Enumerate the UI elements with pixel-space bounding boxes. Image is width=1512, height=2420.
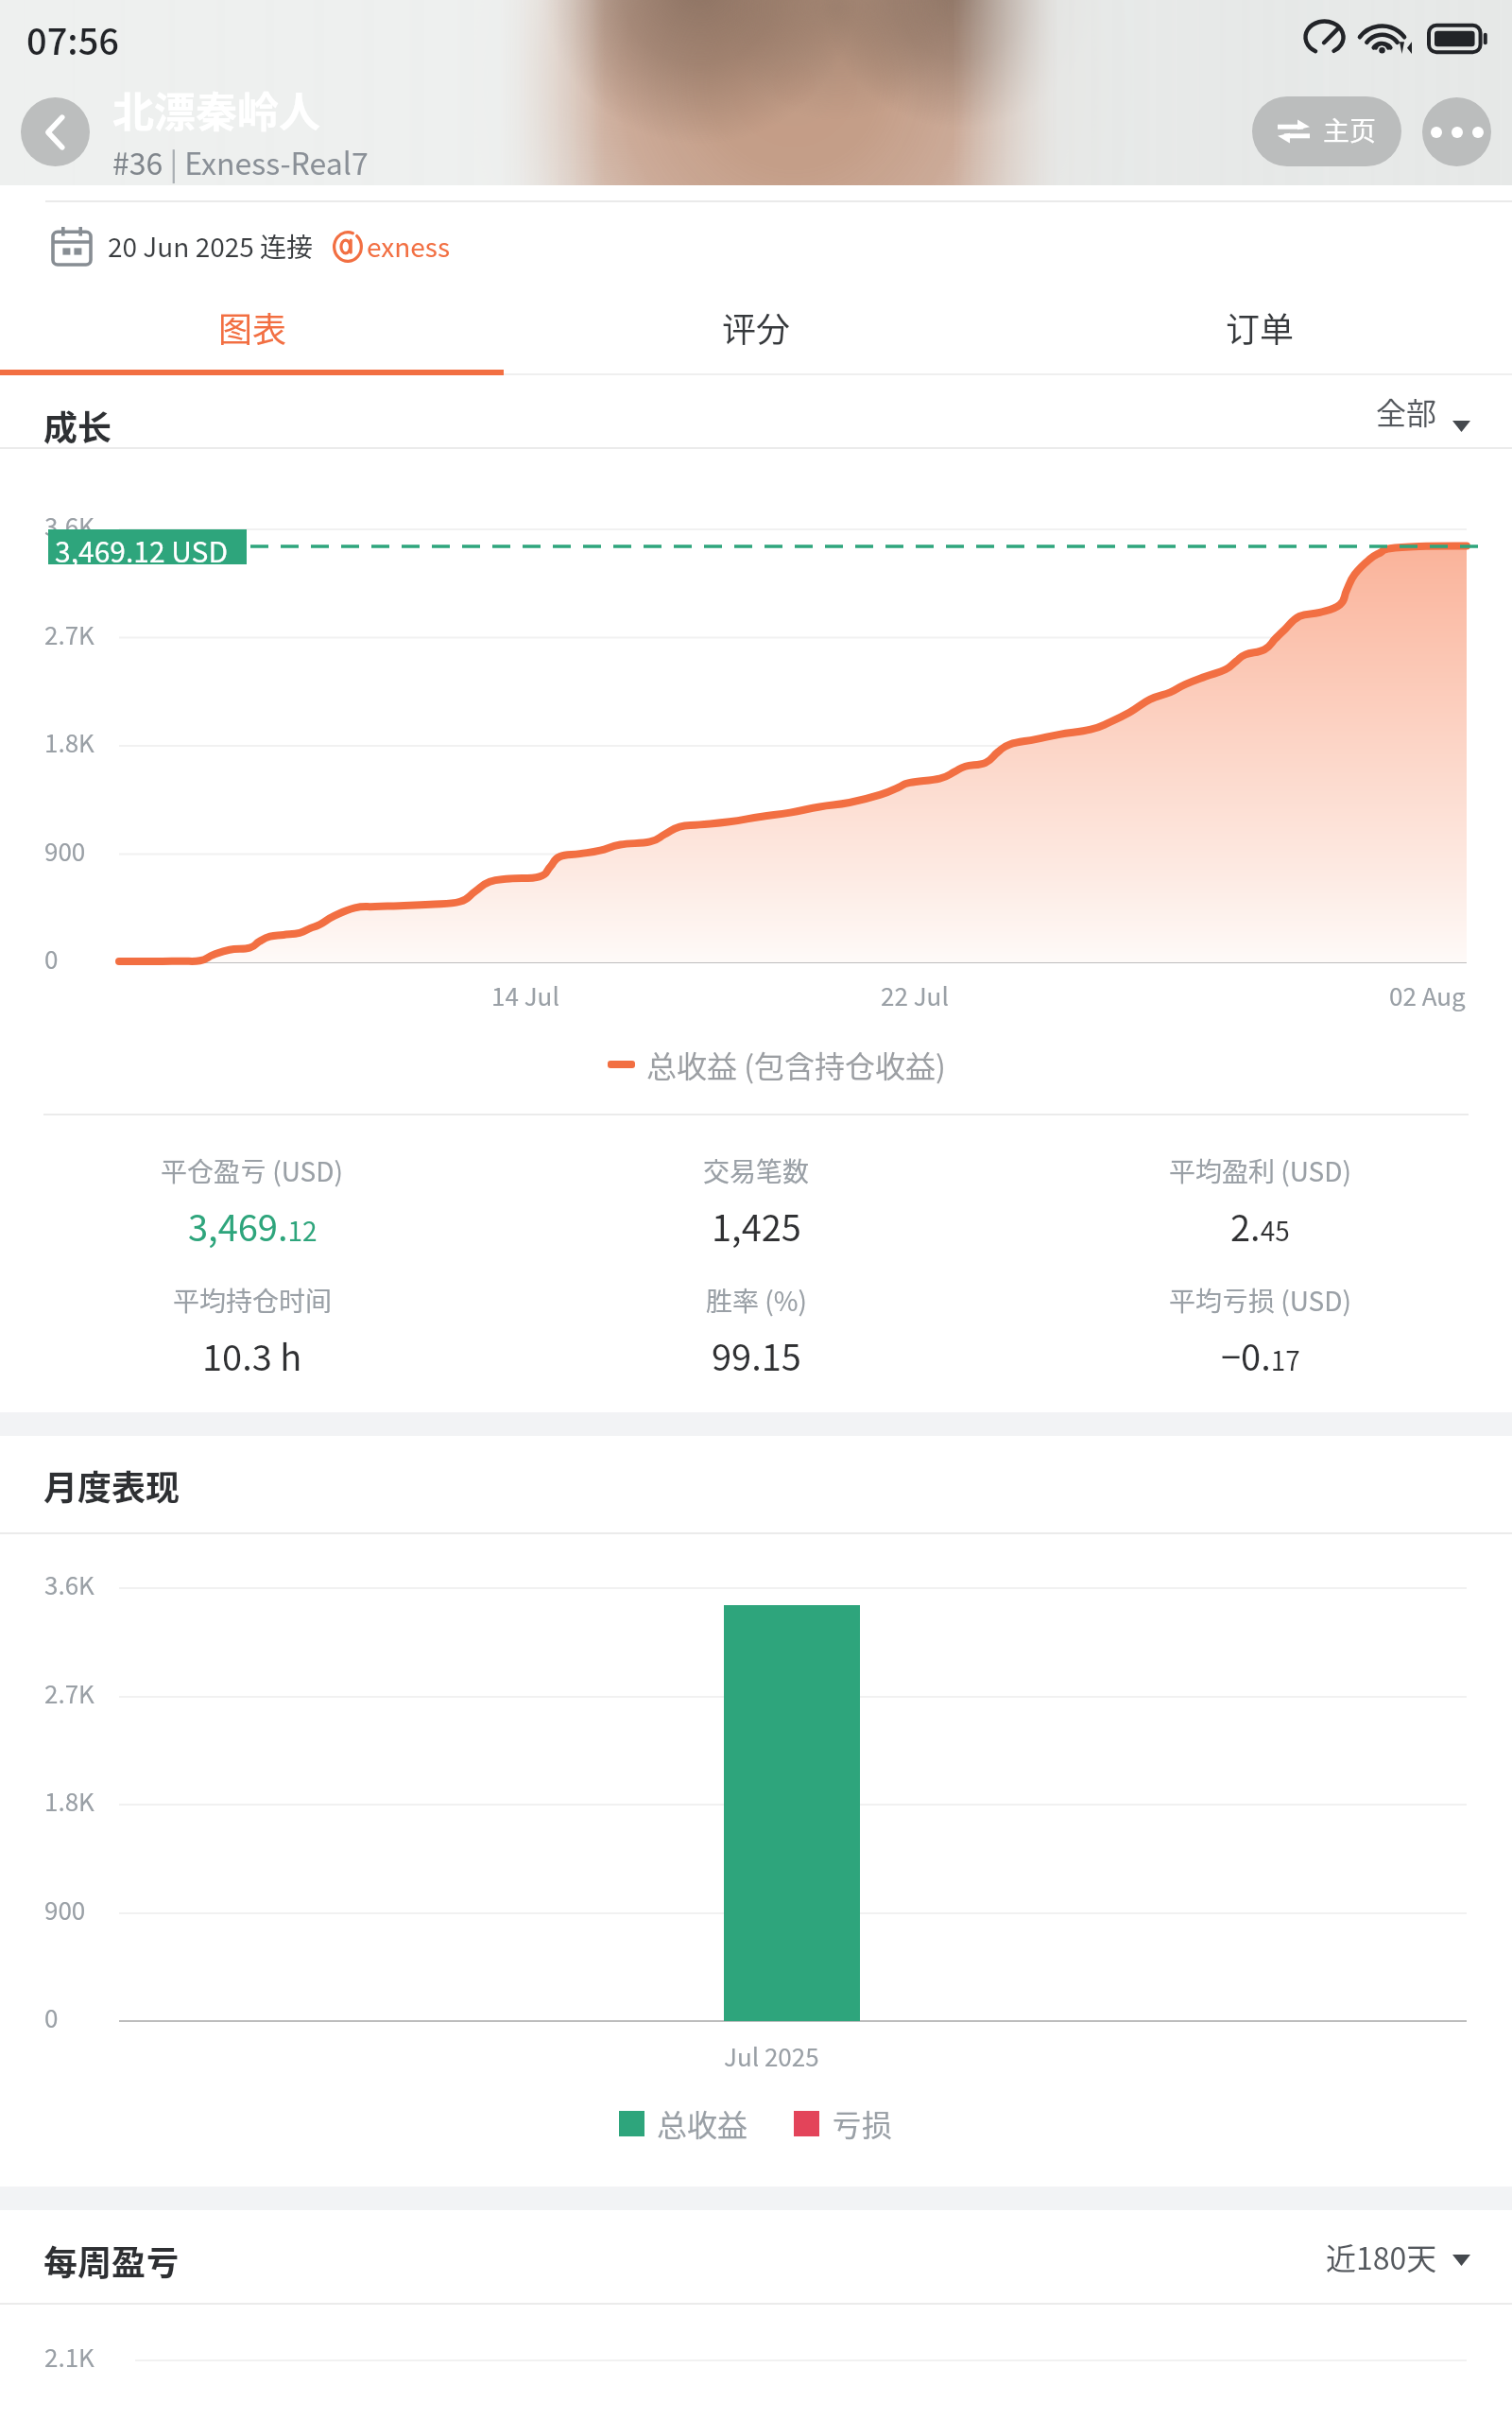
button[interactable]: More options [1422,97,1491,166]
staticText: −0.17 [1221,1329,1300,1381]
staticText: 主页 [1323,111,1377,149]
staticText: 1.8K [44,1783,94,1819]
staticText: 0 [44,1999,59,2035]
staticText: 2.7K [44,1675,94,1711]
staticText: 1.8K [44,724,94,760]
staticText: 平均持仓时间 [173,1281,333,1320]
staticText: 订单 [1226,302,1295,352]
button[interactable]: 全部 [1376,389,1470,433]
staticText: 总收益 (包含持仓收益) [646,1043,946,1086]
staticText: 平均亏损 (USD) [1169,1281,1352,1320]
staticText: 亏损 [832,2101,893,2145]
staticText: 900 [44,1892,86,1927]
staticText: 月度表现 [43,1461,180,1510]
staticText: 全部 [1376,389,1437,433]
staticText: Jul 2025 [724,2038,819,2074]
staticText: #36 | Exness-Real7 [112,140,369,183]
staticText: 评分 [722,302,791,352]
button[interactable]: Back [21,97,90,166]
staticText: 总收益 [657,2101,748,2145]
staticText: 02 Aug [1389,977,1466,1013]
button[interactable]: 近180天 [1326,2235,1470,2278]
staticText: 平均盈利 (USD) [1169,1151,1352,1190]
button[interactable]: 订单 [1008,284,1512,375]
staticText: 胜率 (%) [706,1281,807,1320]
staticText: 图表 [218,302,287,352]
staticText: 平仓盈亏 (USD) [161,1151,344,1190]
staticText: exness [367,227,451,266]
staticText: 近180天 [1326,2235,1437,2278]
staticText: 3.6K [44,508,94,544]
staticText: 22 Jul [881,977,949,1013]
staticText: 3.6K [44,1566,94,1602]
button[interactable]: 主页 [1252,96,1401,166]
staticText: 99.15 [712,1329,801,1381]
staticText: 3,469.12 [188,1200,318,1252]
button[interactable]: 图表 [0,284,505,375]
staticText: 2.1K [44,2339,94,2375]
staticText: 成长 [43,401,112,450]
staticText: 0 [44,941,59,977]
staticText: 1,425 [712,1200,801,1252]
button[interactable]: exness [333,227,451,266]
staticText: 07:56 [26,13,119,65]
staticText: 北漂秦岭人 [112,79,320,140]
staticText: 10.3 h [202,1329,302,1381]
staticText: 20 Jun 2025 连接 [108,227,314,266]
staticText: 3,469.12 USD [55,529,229,564]
staticText: 2.45 [1230,1200,1290,1252]
staticText: 14 Jul [491,977,559,1013]
button[interactable]: 评分 [505,284,1008,375]
staticText: 900 [44,833,86,869]
staticText: 2.7K [44,616,94,652]
staticText: 交易笔数 [703,1151,810,1190]
staticText: 每周盈亏 [43,2236,180,2285]
